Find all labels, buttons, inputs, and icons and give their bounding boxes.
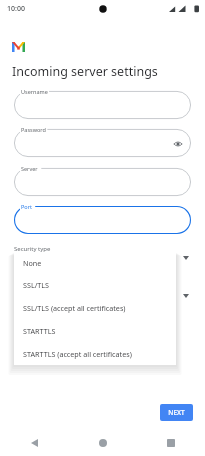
button[interactable]: NEXT	[160, 404, 193, 421]
staticText: Security type	[14, 245, 51, 253]
button[interactable]: STARTTLS	[14, 319, 176, 342]
button[interactable]: Port	[14, 206, 191, 234]
staticText: Incoming server settings	[12, 63, 158, 80]
staticText: Server	[21, 165, 38, 172]
staticText: Port	[21, 203, 32, 210]
button[interactable]: Username	[14, 91, 191, 119]
button[interactable]: None	[14, 252, 176, 274]
staticText: Username	[21, 88, 48, 95]
button[interactable]: Password	[14, 129, 191, 157]
button[interactable]: Server	[14, 168, 191, 196]
button[interactable]: STARTTLS (accept all certificates)	[14, 342, 176, 365]
button[interactable]: SSL/TLS (accept all certificates)	[14, 296, 176, 319]
staticText: SSL/TLS (accept all certificates)	[23, 303, 126, 313]
staticText: STARTTLS	[23, 326, 56, 336]
staticText: STARTTLS (accept all certificates)	[23, 349, 132, 359]
staticText: 10:00	[7, 4, 25, 14]
button[interactable]: Recent apps	[137, 430, 205, 456]
staticText: NEXT	[168, 408, 185, 417]
button[interactable]: Show password	[171, 137, 184, 150]
staticText: None	[23, 258, 42, 268]
staticText: SSL/TLS	[23, 280, 50, 290]
button[interactable]: Back	[0, 430, 69, 456]
button[interactable]: Open dropdown	[181, 253, 191, 263]
button[interactable]: Open dropdown	[181, 291, 191, 301]
button[interactable]: Home	[69, 430, 137, 456]
button[interactable]: SSL/TLS	[14, 274, 176, 296]
staticText: Password	[21, 126, 46, 133]
